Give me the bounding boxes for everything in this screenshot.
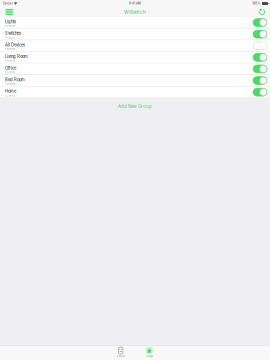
staticText: All Devices (5, 42, 25, 47)
staticText: 2 Devices (5, 83, 15, 85)
button[interactable]: All Devices (0, 40, 270, 52)
staticText: Office (5, 66, 16, 71)
staticText: 4 Devices (5, 59, 15, 62)
button[interactable]: Menu (0, 7, 18, 17)
staticText: Bed Room (5, 77, 25, 82)
staticText: 7 Devices (5, 48, 15, 51)
staticText: 6 Devices (5, 94, 15, 97)
staticText: Carrier (3, 2, 13, 5)
button[interactable]: Home (0, 87, 270, 98)
button[interactable]: Add New Group (0, 100, 270, 112)
staticText: Groups (146, 355, 153, 358)
button[interactable]: Lights (0, 17, 270, 29)
staticText: 100% (252, 2, 260, 5)
staticText: Lights (5, 19, 16, 24)
staticText: Devices (117, 355, 125, 358)
button[interactable]: Groups (135, 345, 164, 360)
staticText: 9:41 AM (129, 2, 141, 5)
button[interactable]: Switches (0, 29, 270, 40)
staticText: 3 Devices (5, 36, 15, 39)
button[interactable]: Office (0, 63, 270, 75)
staticText: WiSwitch (124, 9, 146, 15)
staticText: Switches (5, 31, 21, 36)
button[interactable]: Bed Room (0, 75, 270, 87)
staticText: 3 Devices (5, 25, 15, 27)
staticText: Living Room (5, 54, 28, 59)
button[interactable]: Living Room (0, 52, 270, 63)
button[interactable]: Refresh (253, 7, 270, 17)
staticText: 2 Devices (5, 71, 15, 74)
staticText: Add New Group (118, 104, 152, 109)
button[interactable]: Devices (106, 345, 135, 360)
staticText: Home (5, 89, 16, 94)
